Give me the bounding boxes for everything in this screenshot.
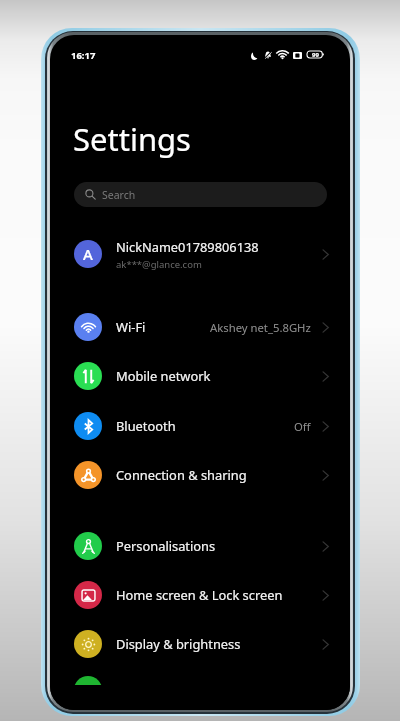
button[interactable]: Personalisations: [50, 521, 350, 571]
button[interactable]: Sound & vibration: [50, 665, 350, 710]
staticText: Display & brightness: [116, 635, 241, 653]
button[interactable]: Display & brightness: [50, 619, 350, 669]
staticText: Wi-Fi: [116, 318, 146, 336]
staticText: Off: [294, 419, 311, 434]
staticText: 16:17: [71, 49, 96, 62]
staticText: A: [83, 244, 93, 264]
staticText: NickName01789806138: [116, 238, 259, 255]
button[interactable]: Home screen & Lock screen: [50, 570, 350, 620]
staticText: 99: [312, 51, 319, 58]
staticText: ak***@glance.com: [116, 258, 202, 271]
staticText: Connection & sharing: [116, 466, 247, 484]
button[interactable]: Connection & sharing: [50, 450, 350, 500]
staticText: Home screen & Lock screen: [116, 586, 283, 604]
staticText: Settings: [73, 118, 191, 160]
staticText: Mobile network: [116, 367, 211, 385]
staticText: Akshey net_5.8GHz: [210, 320, 311, 335]
button[interactable]: Mobile network: [50, 351, 350, 401]
staticText: Personalisations: [116, 537, 216, 555]
button[interactable]: Bluetooth: [50, 401, 350, 451]
button[interactable]: Wi-Fi: [50, 302, 350, 352]
button[interactable]: A: [50, 229, 350, 279]
staticText: Bluetooth: [116, 417, 176, 435]
button[interactable]: Search: [74, 182, 327, 207]
staticText: Search: [102, 188, 136, 202]
